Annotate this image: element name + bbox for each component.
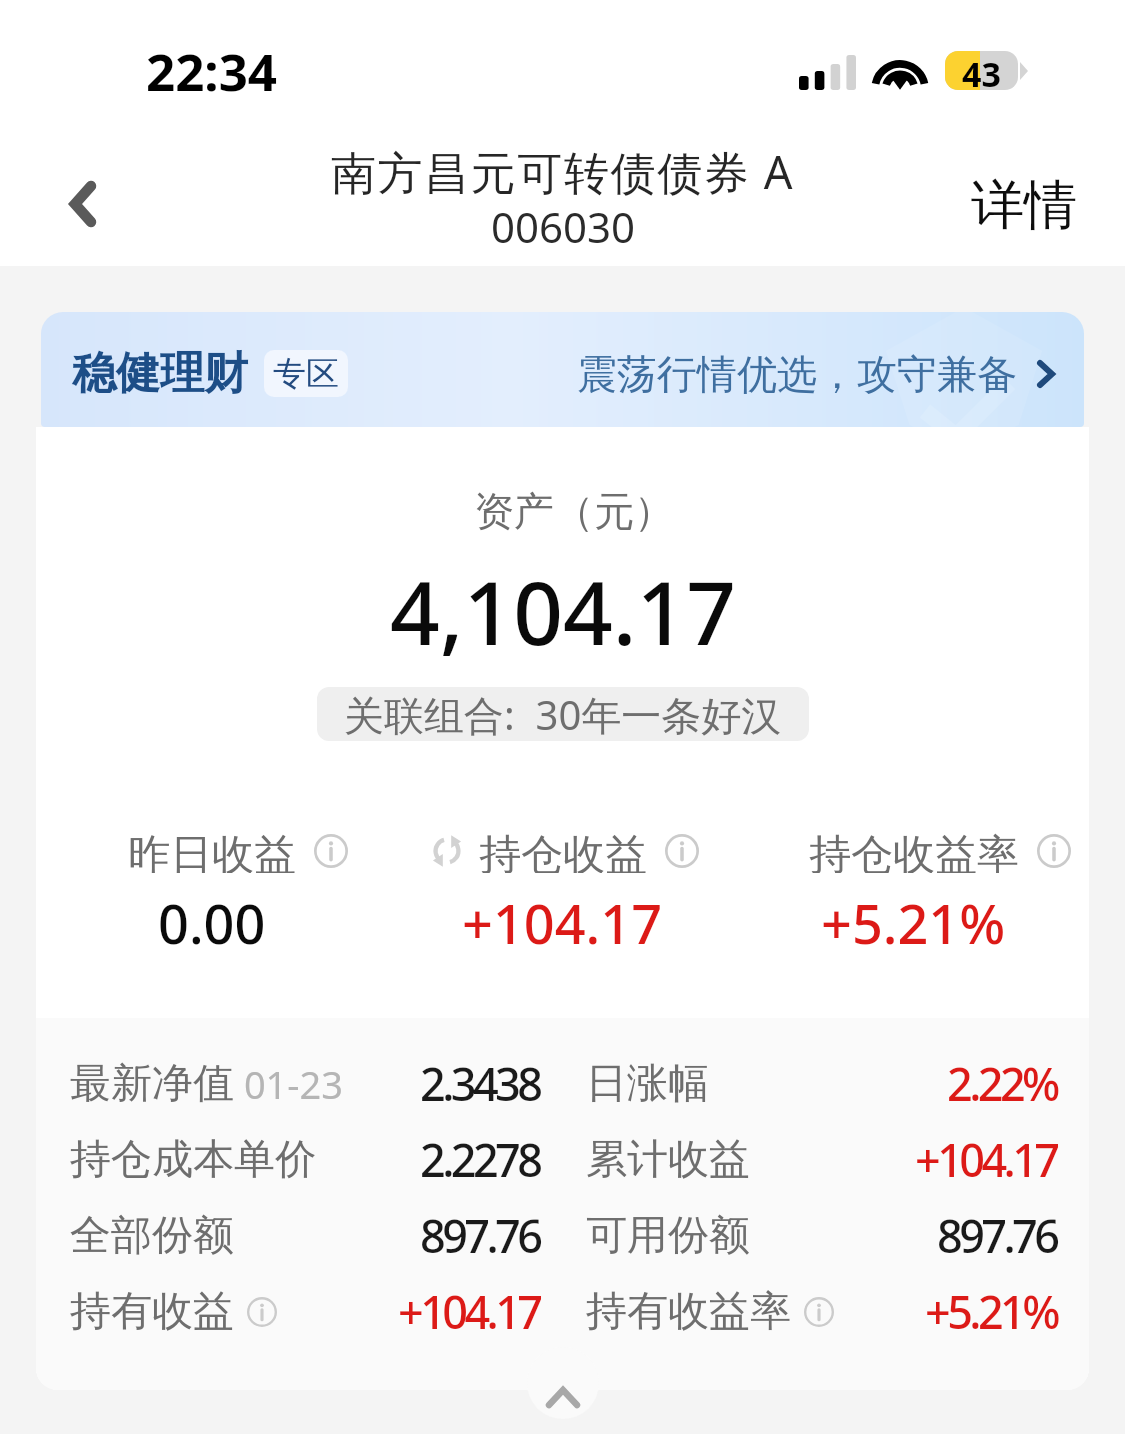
button[interactable]: Collapse	[527, 1347, 599, 1419]
staticText: 日涨幅	[586, 1058, 709, 1110]
staticText: 资产（元）	[474, 486, 674, 536]
staticText: 详情	[971, 172, 1077, 239]
staticText: 2.3438	[420, 1053, 540, 1114]
staticText: 南方昌元可转债债券 A	[331, 141, 795, 202]
staticText: 43	[962, 51, 1001, 90]
button[interactable]: 详情	[971, 172, 1077, 239]
staticText: 4,104.17	[390, 552, 736, 670]
staticText: 006030	[491, 198, 636, 255]
staticText: 持有收益率	[586, 1286, 791, 1338]
button[interactable]: 持仓收益	[387, 829, 738, 960]
staticText: 最新净值	[70, 1058, 234, 1110]
button[interactable]: 昨日收益	[36, 829, 387, 960]
staticText: 专区	[273, 353, 339, 395]
staticText: 897.76	[937, 1205, 1057, 1266]
staticText: 可用份额	[586, 1210, 750, 1262]
staticText: 2.22%	[947, 1053, 1057, 1114]
staticText: 关联组合: 30年一条好汉	[344, 687, 782, 741]
button[interactable]: 关联组合: 30年一条好汉	[317, 687, 809, 741]
staticText: +104.17	[398, 1281, 540, 1342]
staticText: 01-23	[234, 1058, 344, 1110]
staticText: 持仓收益	[479, 829, 647, 873]
staticText: 全部份额	[70, 1210, 234, 1262]
button[interactable]: 稳健理财	[41, 312, 1084, 427]
staticText: +104.17	[915, 1129, 1057, 1190]
staticText: 897.76	[420, 1205, 540, 1266]
button[interactable]: Back	[40, 166, 120, 246]
staticText: 震荡行情优选，攻守兼备	[577, 349, 1017, 399]
staticText: 2.2278	[420, 1129, 540, 1190]
staticText: 稳健理财	[72, 346, 248, 401]
staticText: 昨日收益	[128, 829, 296, 873]
staticText: 持仓成本单价	[70, 1134, 316, 1186]
staticText: 累计收益	[586, 1134, 750, 1186]
staticText: 持有收益	[70, 1286, 234, 1338]
staticText: 持仓收益率	[809, 829, 1019, 873]
staticText: 22:34	[146, 36, 278, 105]
staticText: +5.21%	[925, 1281, 1057, 1342]
staticText: +104.17	[462, 886, 663, 960]
staticText: +5.21%	[821, 886, 1006, 960]
button[interactable]: 持仓收益率	[738, 829, 1089, 960]
staticText: 0.00	[158, 886, 266, 960]
